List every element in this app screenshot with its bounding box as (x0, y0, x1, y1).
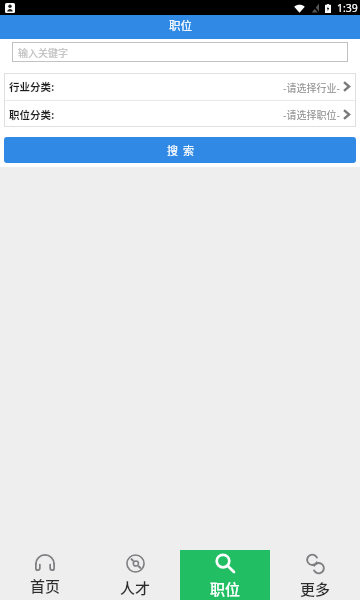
staticText: 职位分类: (9, 107, 55, 122)
button[interactable]: 输入关键字 (12, 42, 348, 62)
button[interactable]: 人才 (90, 550, 180, 600)
button[interactable]: 行业分类: (4, 73, 356, 100)
staticText: -请选择行业- (283, 80, 340, 94)
button[interactable]: 职位分类: (4, 101, 356, 127)
staticText: 更多 (300, 578, 331, 600)
staticText: 行业分类: (9, 79, 55, 94)
button[interactable]: 更多 (270, 550, 360, 600)
staticText: 职位 (210, 578, 241, 600)
staticText: 搜 索 (167, 142, 194, 158)
button[interactable]: 首页 (0, 550, 90, 600)
staticText: 人才 (120, 577, 151, 599)
staticText: 首页 (30, 575, 61, 597)
button[interactable]: 职位 (180, 550, 270, 600)
staticText: 1:39 (337, 1, 358, 15)
button[interactable]: 搜 索 (4, 137, 356, 163)
staticText: -请选择职位- (283, 107, 340, 121)
staticText: 输入关键字 (18, 45, 68, 59)
staticText: 职位 (169, 17, 192, 34)
